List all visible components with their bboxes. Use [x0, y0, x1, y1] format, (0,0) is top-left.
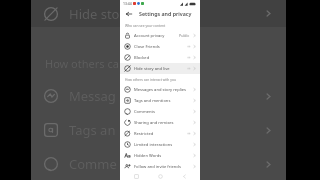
staticText: Messag — [69, 87, 116, 105]
button[interactable]: Back — [123, 8, 134, 19]
staticText: Messages and story replies — [134, 87, 187, 93]
staticText: Limited interactions — [134, 142, 173, 148]
button[interactable]: Blocked — [120, 52, 200, 63]
staticText: 13:44 — [123, 1, 132, 6]
staticText: Hide story and live — [134, 66, 170, 72]
button[interactable]: Recent apps — [128, 172, 144, 180]
staticText: Comme — [69, 155, 117, 173]
staticText: Tags and mentions — [134, 98, 171, 104]
button[interactable]: Hidden Words — [120, 150, 200, 161]
staticText: Who can see your content — [125, 23, 166, 27]
staticText: Public — [179, 33, 190, 38]
staticText: How others ca — [45, 56, 119, 71]
staticText: Hide sto — [69, 5, 120, 23]
staticText: Follow and invite friends — [134, 164, 181, 170]
button[interactable]: Messages and story replies — [120, 84, 200, 95]
button[interactable]: Account privacy — [120, 30, 200, 41]
button[interactable]: Follow and invite friends — [120, 161, 200, 172]
button[interactable]: Hide story and live — [120, 63, 200, 74]
staticText: Tags an — [69, 121, 116, 139]
button[interactable]: Limited interactions — [120, 139, 200, 150]
button[interactable]: Restricted — [120, 128, 200, 139]
button[interactable]: Messag — [31, 85, 286, 107]
staticText: Blocked — [134, 55, 150, 61]
staticText: Restricted — [134, 131, 154, 137]
button[interactable]: Hide sto — [31, 0, 286, 27]
staticText: Account privacy — [134, 33, 165, 39]
button[interactable]: Home — [152, 172, 168, 180]
staticText: Close Friends — [134, 44, 160, 50]
button[interactable]: Comme — [31, 153, 286, 175]
staticText: Hidden Words — [134, 153, 162, 159]
button[interactable]: Close Friends — [120, 41, 200, 52]
staticText: Settings and privacy — [139, 10, 192, 17]
button[interactable]: Tags and mentions — [120, 95, 200, 106]
button[interactable]: Back — [176, 172, 192, 180]
staticText: Comments — [134, 109, 155, 115]
staticText: How others can interact with you — [125, 77, 176, 81]
staticText: Sharing and remixes — [134, 120, 174, 126]
button[interactable]: Sharing and remixes — [120, 117, 200, 128]
button[interactable]: Tags an — [31, 119, 286, 141]
button[interactable]: Comments — [120, 106, 200, 117]
